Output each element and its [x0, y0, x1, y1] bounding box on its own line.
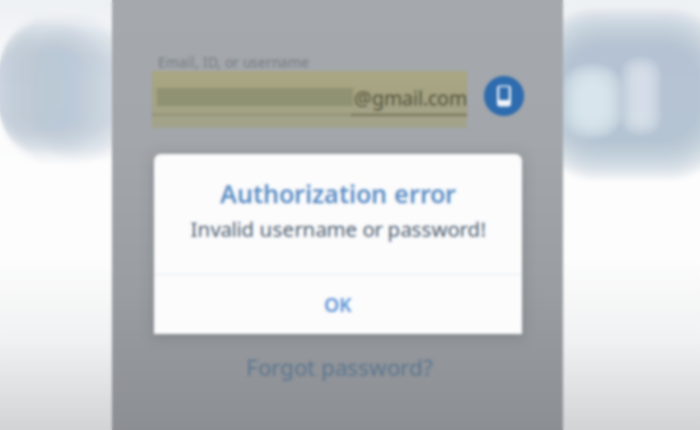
button[interactable]: Verify device — [484, 76, 524, 116]
staticText: OK — [324, 292, 352, 317]
staticText: Invalid username or password! — [190, 215, 485, 242]
button[interactable]: Forgot password? — [246, 350, 446, 384]
button[interactable]: OK — [154, 275, 522, 334]
staticText: @gmail.com — [354, 85, 467, 111]
staticText: Email, ID, or username — [158, 53, 309, 71]
staticText: Forgot password? — [246, 352, 433, 382]
staticText: Authorization error — [220, 177, 456, 210]
